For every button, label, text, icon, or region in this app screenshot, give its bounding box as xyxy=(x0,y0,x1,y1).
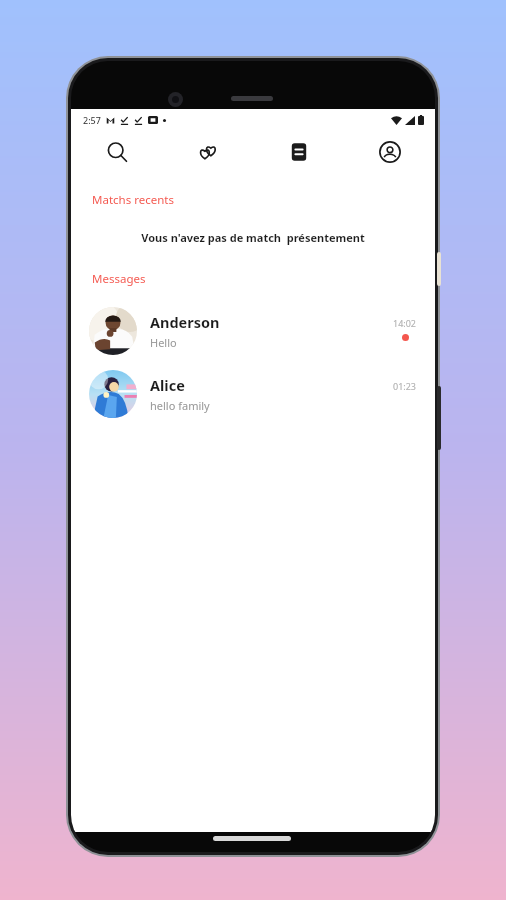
staticText: Messages xyxy=(92,271,146,287)
staticText: 01:23 xyxy=(393,380,417,392)
button[interactable]: Alice xyxy=(71,362,435,425)
button[interactable]: Messages xyxy=(253,130,344,174)
staticText: 14:02 xyxy=(393,317,417,329)
button[interactable]: Profile xyxy=(344,130,435,174)
staticText: hello family xyxy=(150,398,210,413)
staticText: 2:57 xyxy=(83,114,101,126)
staticText: Hello xyxy=(150,335,177,350)
button[interactable]: Search xyxy=(71,130,162,174)
button[interactable]: Anderson xyxy=(71,299,435,362)
button[interactable]: Matches xyxy=(162,130,253,174)
staticText: Anderson xyxy=(150,312,220,332)
staticText: Matchs recents xyxy=(92,192,174,208)
staticText: Vous n'avez pas de match présentement xyxy=(71,230,435,245)
staticText: Alice xyxy=(150,375,185,395)
